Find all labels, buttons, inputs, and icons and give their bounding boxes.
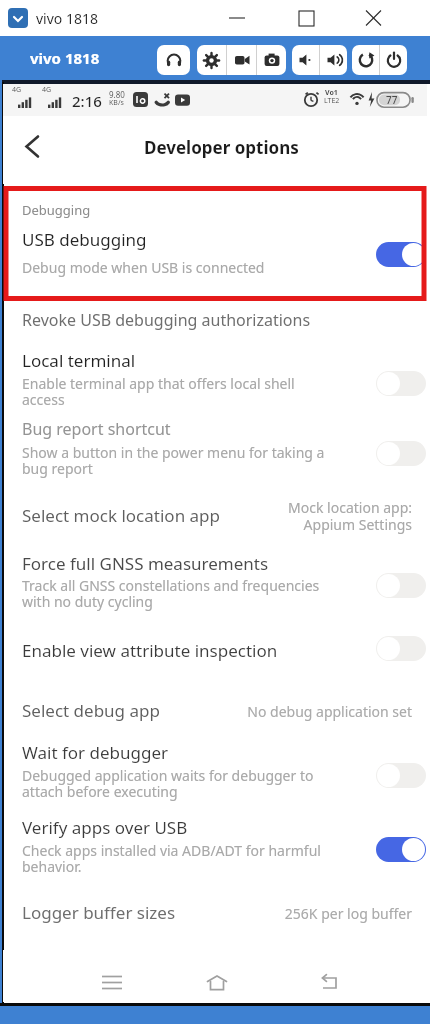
button[interactable] [3,736,427,802]
staticText: Debugged application waits for debugger … [22,766,314,785]
button[interactable] [3,630,427,674]
button[interactable] [376,371,426,396]
staticText: Debug mode when USB is connected [22,258,265,277]
button[interactable] [380,45,407,75]
button[interactable] [376,242,426,267]
staticText: 9.80 [109,89,125,100]
staticText: Vo1 [325,88,338,98]
button[interactable] [3,494,427,546]
staticText: Logger buffer sizes [22,901,176,924]
button[interactable] [3,222,427,294]
button[interactable] [157,45,190,75]
button[interactable] [3,892,427,936]
staticText: vivo 1818 [36,9,98,28]
staticText: 77 [386,93,398,107]
button[interactable] [376,763,426,788]
button[interactable] [3,810,427,878]
staticText: attach before executing [22,782,178,801]
button[interactable] [190,961,244,1005]
button[interactable] [284,0,340,36]
staticText: Select mock location app [22,504,220,527]
button[interactable] [376,573,426,598]
staticText: Check apps installed via ADB/ADT for har… [22,841,321,860]
staticText: 2:16 [72,91,102,111]
button[interactable] [3,412,427,480]
button[interactable] [376,441,426,466]
button[interactable] [216,0,272,36]
staticText: Show a button in the power menu for taki… [22,443,325,462]
button[interactable] [292,45,319,75]
button[interactable] [302,961,356,1005]
staticText: Track all GNSS constellations and freque… [22,576,320,595]
staticText: 4G [12,85,22,95]
button[interactable] [352,45,379,75]
staticText: Local terminal [22,349,136,372]
staticText: Verify apps over USB [22,816,188,839]
staticText: Developer options [144,136,299,159]
button[interactable] [197,45,226,75]
staticText: Enable view attribute inspection [22,639,278,662]
staticText: LTE2 [324,96,340,106]
staticText: 256K per log buffer [284,904,412,923]
staticText: behavior. [22,857,82,876]
staticText: with no duty cycling [22,592,153,611]
button[interactable] [3,690,427,734]
button[interactable] [10,128,50,168]
button[interactable] [85,961,139,1005]
button[interactable] [376,837,426,862]
button[interactable] [257,45,286,75]
staticText: KB/s [109,98,124,108]
button[interactable] [352,0,408,36]
staticText: Select debug app [22,699,160,722]
button[interactable] [3,304,427,344]
button[interactable] [320,45,347,75]
button[interactable] [3,546,427,612]
button[interactable] [376,636,426,661]
staticText: Revoke USB debugging authorizations [22,309,311,331]
button[interactable] [227,45,256,75]
staticText: vivo 1818 [30,48,100,68]
staticText: Mock location app: [288,498,412,517]
staticText: Wait for debugger [22,741,169,764]
staticText: Debugging [22,201,91,219]
button[interactable] [3,344,427,410]
staticText: Force full GNSS measurements [22,552,269,575]
staticText: 4G [42,85,52,95]
staticText: access [22,390,65,409]
staticText: Bug report shortcut [22,418,171,440]
staticText: bug report [22,459,93,478]
staticText: Appium Settings [303,515,412,534]
staticText: Enable terminal app that offers local sh… [22,374,295,393]
staticText: USB debugging [22,228,147,251]
staticText: No debug application set [247,702,412,721]
